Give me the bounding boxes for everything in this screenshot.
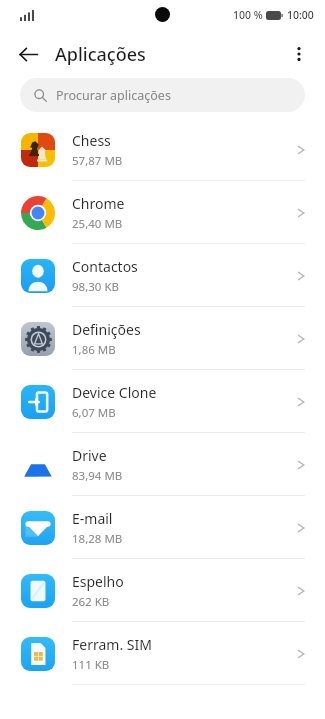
staticText: Ferram. SIM	[72, 635, 152, 654]
button[interactable]: Contactos	[0, 244, 325, 307]
staticText: Contactos	[72, 257, 138, 276]
button[interactable]: Definições	[0, 307, 325, 370]
staticText: 57,87 MB	[72, 153, 123, 169]
button[interactable]: Chrome	[0, 181, 325, 244]
staticText: 262 KB	[72, 594, 110, 610]
staticText: 98,30 KB	[72, 279, 119, 295]
staticText: 25,40 MB	[72, 216, 123, 232]
button[interactable]: Espelho	[0, 559, 325, 622]
staticText: Procurar aplicações	[56, 87, 171, 104]
staticText: Aplicações	[55, 42, 146, 67]
staticText: 100 %	[233, 8, 263, 22]
staticText: Espelho	[72, 572, 124, 591]
staticText: Device Clone	[72, 383, 157, 402]
button[interactable]: E-mail	[0, 496, 325, 559]
button[interactable]: Chess	[0, 118, 325, 181]
staticText: 10:00	[287, 8, 314, 22]
staticText: Chrome	[72, 194, 125, 213]
button[interactable]: Back	[8, 34, 48, 74]
staticText: E-mail	[72, 509, 113, 528]
staticText: 111 KB	[72, 657, 110, 673]
staticText: 83,94 MB	[72, 468, 123, 484]
button[interactable]: Device Clone	[0, 370, 325, 433]
button[interactable]: Ferram. SIM	[0, 622, 325, 685]
staticText: Drive	[72, 446, 107, 465]
staticText: 18,28 MB	[72, 531, 123, 547]
button[interactable]: Drive	[0, 433, 325, 496]
staticText: 6,07 MB	[72, 405, 116, 421]
button[interactable]: Procurar aplicações	[20, 78, 305, 112]
staticText: 1,86 MB	[72, 342, 116, 358]
staticText: Chess	[72, 131, 111, 150]
staticText: Definições	[72, 320, 141, 339]
button[interactable]: More options	[279, 34, 319, 74]
